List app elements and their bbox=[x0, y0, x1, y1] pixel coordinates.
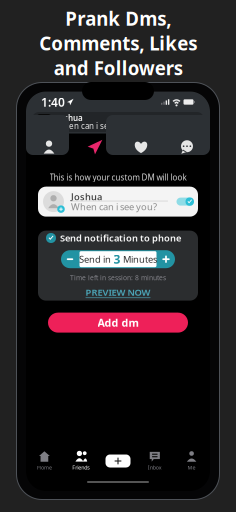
staticText: now bbox=[187, 114, 200, 123]
staticText: Joshua bbox=[57, 113, 83, 123]
staticText: Prank Dms, Comments, Likes and Followers bbox=[39, 6, 197, 80]
button[interactable]: Likes bbox=[118, 133, 164, 161]
button[interactable]: Direct messages bbox=[72, 133, 118, 161]
button[interactable]: Me bbox=[173, 451, 210, 471]
staticText: Minutes bbox=[123, 253, 157, 265]
staticText: 3 bbox=[113, 251, 120, 267]
button[interactable]: Add dm bbox=[48, 313, 188, 333]
button[interactable]: Home bbox=[26, 451, 63, 471]
staticText: PREVIEW NOW bbox=[85, 286, 150, 298]
staticText: Send notification to phone bbox=[60, 232, 181, 244]
staticText: When can i see you? bbox=[71, 200, 157, 213]
staticText: Inbox bbox=[148, 464, 162, 471]
button[interactable]: Decrease minutes bbox=[61, 250, 79, 268]
staticText: When can i see you? bbox=[57, 121, 133, 131]
button[interactable]: Increase minutes bbox=[157, 250, 175, 268]
staticText: Me bbox=[188, 464, 196, 471]
button[interactable]: Create bbox=[100, 451, 136, 471]
staticText: Time left in session: 8 minutes bbox=[70, 273, 166, 282]
staticText: This is how your custom DM will look bbox=[49, 172, 186, 183]
staticText: Home bbox=[37, 464, 52, 471]
button[interactable]: PREVIEW NOW bbox=[85, 282, 150, 306]
staticText: Joshua bbox=[71, 190, 102, 203]
button[interactable]: Inbox bbox=[136, 451, 173, 471]
staticText: 1:40 bbox=[41, 94, 65, 110]
button[interactable]: Profile bbox=[26, 133, 72, 161]
staticText: Send in bbox=[79, 253, 111, 265]
button[interactable]: Friends bbox=[63, 451, 100, 471]
staticText: Friends bbox=[72, 464, 90, 471]
staticText: Add dm bbox=[97, 315, 138, 330]
button[interactable]: Comments bbox=[164, 133, 210, 161]
